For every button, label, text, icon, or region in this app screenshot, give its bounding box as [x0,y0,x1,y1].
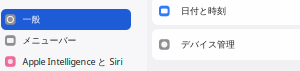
staticText: 一般 [23,14,41,25]
staticText: Apple Intelligence と Siri [23,55,123,68]
staticText: デバイス管理 [181,39,235,50]
button[interactable]: 一般 [1,9,131,30]
button[interactable]: Apple Intelligence と Siri [1,51,131,71]
button[interactable]: メニューバー [1,30,131,51]
button[interactable]: 日付と時刻 [152,0,300,22]
button[interactable]: デバイス管理 [152,33,300,55]
staticText: 日付と時刻 [181,5,226,17]
staticText: メニューバー [23,35,77,46]
